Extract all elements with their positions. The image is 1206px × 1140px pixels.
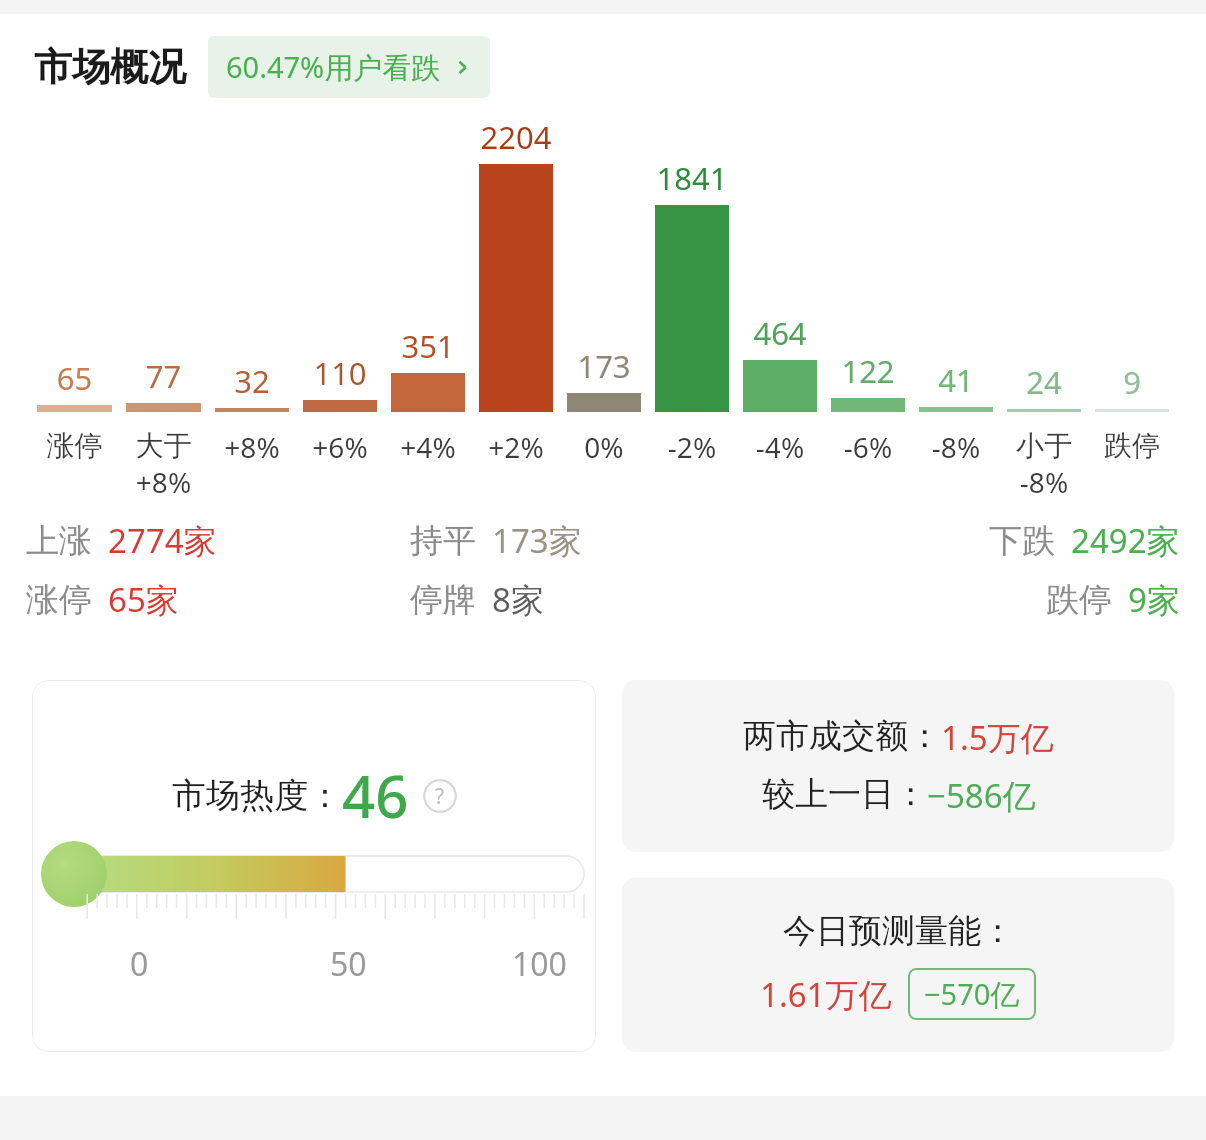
staticText: 今日预测量能：	[783, 910, 1014, 952]
staticText: +4%	[384, 428, 472, 466]
staticText: −570亿	[924, 974, 1020, 1014]
staticText: 173	[560, 345, 648, 387]
staticText: -6%	[824, 428, 912, 466]
staticText: 2492家	[1071, 518, 1180, 563]
staticText: 跌停	[1046, 579, 1112, 621]
staticText: 9家	[1128, 577, 1180, 622]
staticText: 1841	[648, 157, 736, 199]
staticText: 32	[208, 360, 296, 402]
staticText: 涨停	[30, 428, 119, 463]
staticText: 0%	[560, 428, 648, 466]
staticText: -2%	[648, 428, 736, 466]
staticText: 持平	[410, 520, 476, 562]
staticText: 24	[1000, 361, 1088, 403]
staticText: +2%	[472, 428, 560, 466]
staticText: 464	[736, 312, 824, 354]
staticText: 50	[330, 942, 367, 986]
staticText: 77	[119, 355, 208, 397]
staticText: 0	[130, 942, 149, 986]
staticText: 41	[912, 359, 1000, 401]
staticText: 较上一日：	[762, 773, 927, 815]
staticText: 小于	[1000, 428, 1088, 463]
staticText: 2204	[472, 116, 560, 158]
staticText: 173家	[492, 518, 582, 563]
button[interactable]: 市场热度说明	[423, 779, 457, 813]
staticText: 122	[824, 350, 912, 392]
staticText: −586亿	[927, 773, 1036, 818]
staticText: +8%	[119, 463, 208, 501]
button[interactable]: 市场热度：	[32, 680, 596, 1052]
staticText: 大于	[119, 428, 208, 463]
staticText: 60.47%用户看跌	[226, 47, 441, 87]
staticText: 65	[30, 357, 119, 399]
staticText: -8%	[912, 428, 1000, 466]
staticText: 上涨	[26, 520, 92, 562]
staticText: 下跌	[989, 520, 1055, 562]
staticText: 351	[384, 325, 472, 367]
staticText: 两市成交额：	[743, 715, 941, 757]
staticText: -8%	[1000, 463, 1088, 501]
button[interactable]: 两市成交额：	[622, 680, 1174, 852]
staticText: 市场热度：	[172, 774, 342, 817]
staticText: 1.61万亿	[760, 972, 892, 1017]
staticText: 46	[342, 756, 409, 835]
staticText: 100	[512, 942, 567, 986]
staticText: 9	[1088, 361, 1176, 403]
staticText: -4%	[736, 428, 824, 466]
button[interactable]: 60.47%用户看跌	[208, 36, 490, 98]
staticText: 110	[296, 352, 384, 394]
staticText: +6%	[296, 428, 384, 466]
staticText: 65家	[108, 577, 179, 622]
staticText: 涨停	[26, 579, 92, 621]
button[interactable]: 今日预测量能：	[622, 878, 1174, 1052]
staticText: 1.5万亿	[941, 715, 1054, 760]
staticText: 停牌	[410, 579, 476, 621]
staticText: ?	[435, 782, 445, 811]
staticText: +8%	[208, 428, 296, 466]
staticText: 2774家	[108, 518, 217, 563]
staticText: 跌停	[1088, 428, 1176, 463]
staticText: 市场概况	[34, 43, 186, 91]
staticText: 8家	[492, 577, 544, 622]
